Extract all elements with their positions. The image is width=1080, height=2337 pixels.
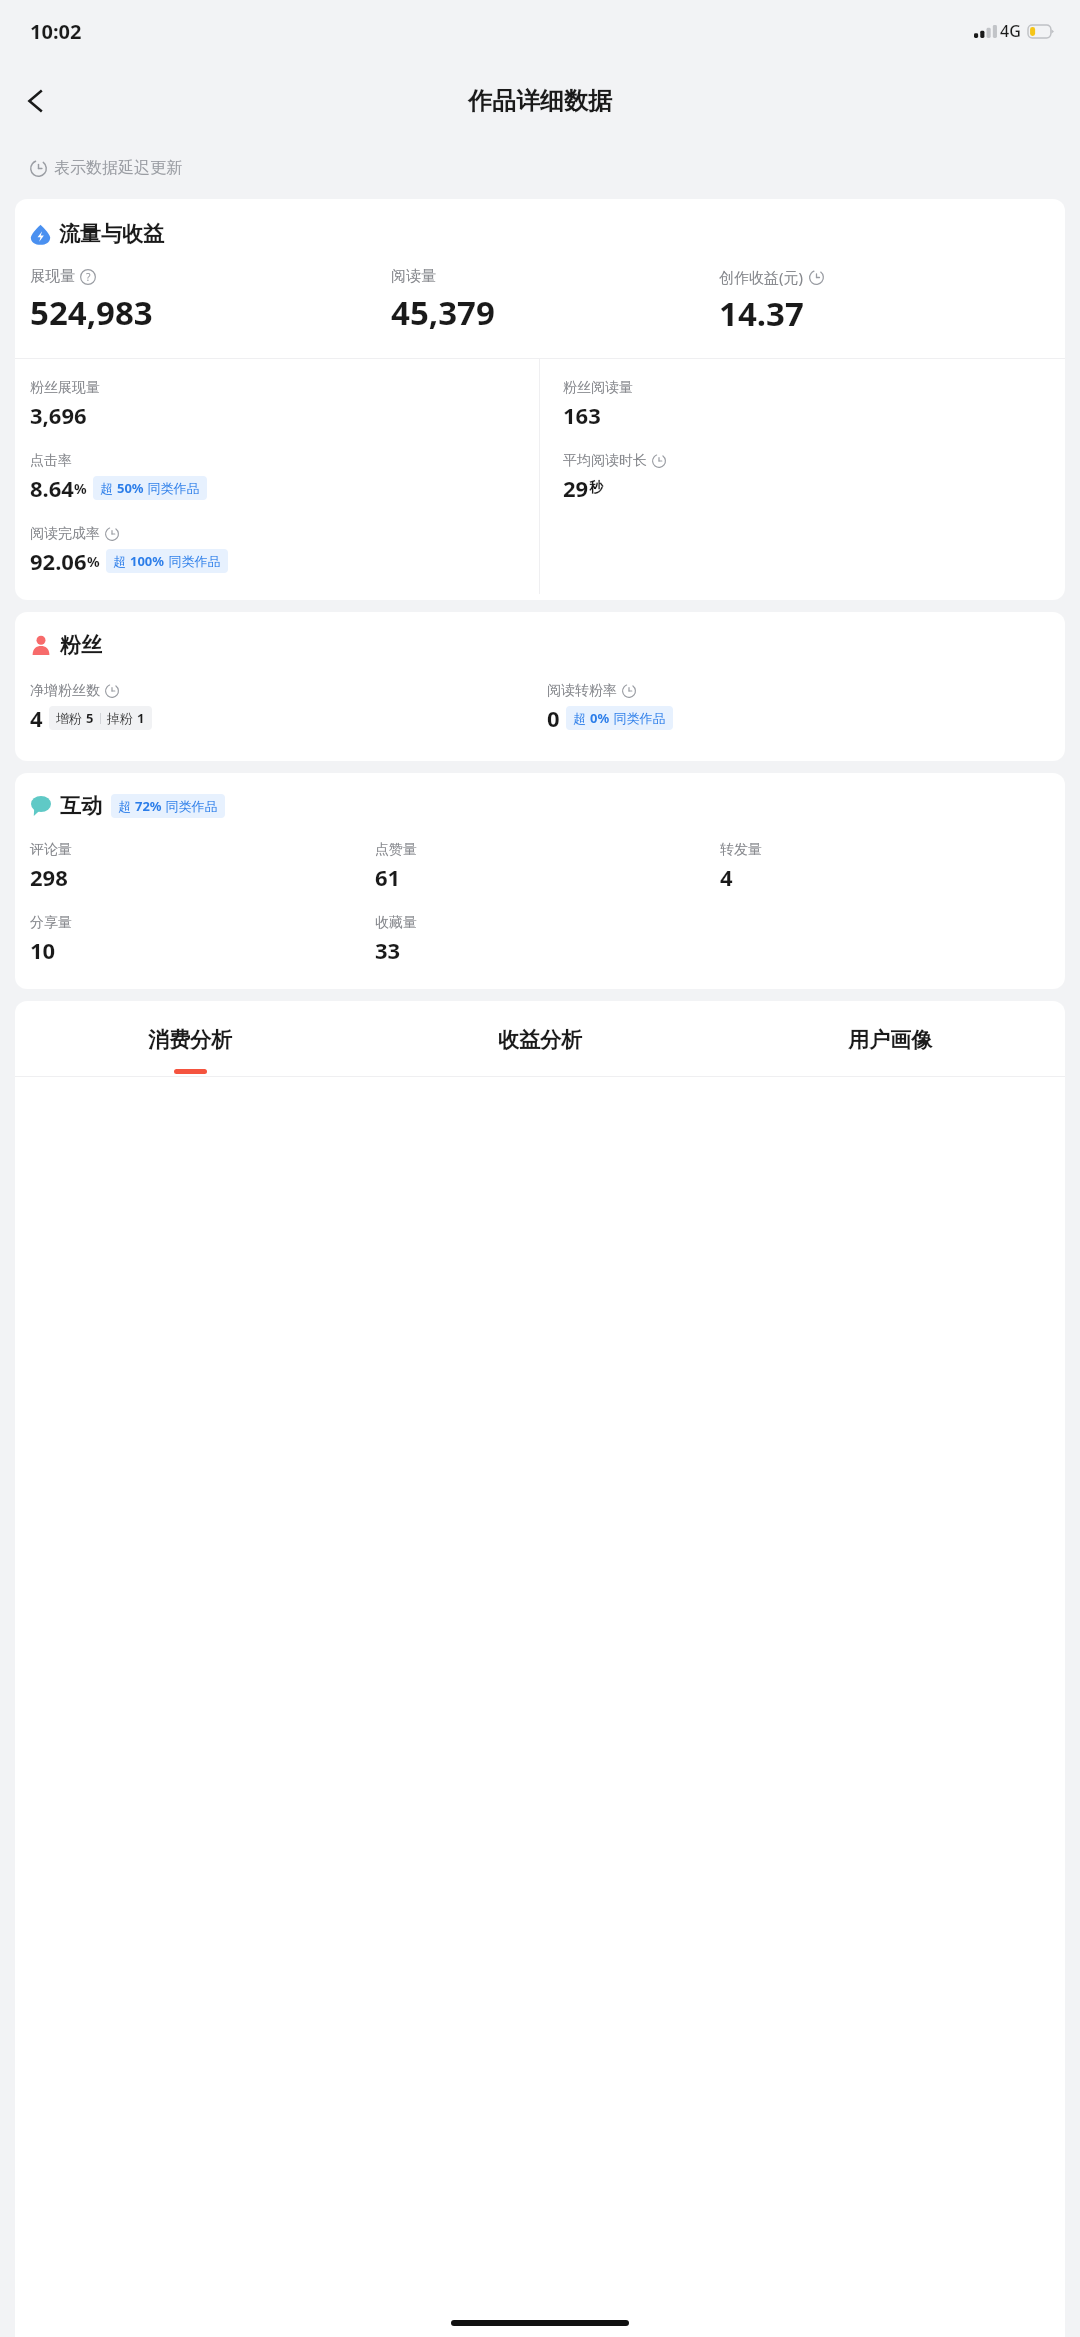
staticText: 平均阅读时长 [563,452,647,470]
staticText: 点击率 [30,452,72,470]
staticText: 10:02 [30,18,82,45]
staticText: 298 [30,862,68,892]
staticText: 524,983 [30,290,153,335]
staticText: 粉丝展现量 [30,379,100,397]
staticText: 50% [117,479,144,497]
staticText: 8.64 [30,473,74,503]
staticText: 净增粉丝数 [30,682,100,700]
staticText: % [87,552,100,571]
staticText: 秒 [589,479,603,497]
staticText: 29 [563,473,589,503]
staticText: 表示数据延迟更新 [54,158,182,178]
staticText: 92.06 [30,546,87,576]
staticText: 收益分析 [498,1027,582,1053]
staticText: 收藏量 [375,914,417,932]
staticText: 3,696 [30,400,87,430]
staticText: 粉丝阅读量 [563,379,633,397]
button[interactable]: Back [8,73,64,129]
staticText: 同类作品 [144,479,200,497]
staticText: 互动 [60,793,102,819]
staticText: 掉粉 [107,709,137,727]
staticText: 4 [30,703,43,733]
staticText: ? [86,270,91,284]
staticText: 展现量 [30,267,75,286]
staticText: 阅读量 [391,267,436,286]
staticText: % [74,479,87,498]
staticText: 14.37 [719,291,804,336]
staticText: 超 [573,709,590,727]
staticText: 创作收益(元) [719,267,804,287]
staticText: 0 [547,703,560,733]
staticText: 100% [130,552,165,570]
staticText: 超 [118,797,135,815]
staticText: 点赞量 [375,841,417,859]
staticText: 同类作品 [165,552,221,570]
staticText: 45,379 [391,290,495,335]
staticText: 流量与收益 [59,221,164,247]
button[interactable]: 粉丝 [15,612,1065,761]
button[interactable]: 流量与收益 [15,199,1065,600]
staticText: 同类作品 [162,797,218,815]
staticText: 分享量 [30,914,72,932]
staticText: 作品详细数据 [468,86,612,116]
staticText: 超 [100,479,117,497]
staticText: 阅读完成率 [30,525,100,543]
staticText: 0% [590,709,610,727]
staticText: 同类作品 [610,709,666,727]
staticText: 5 [86,709,94,727]
staticText: 4 [720,862,733,892]
button[interactable]: 用户画像 [715,1027,1065,1074]
staticText: 转发量 [720,841,762,859]
staticText: 10 [30,935,56,965]
button[interactable]: 互动 [15,773,1065,989]
staticText: 超 [113,552,130,570]
staticText: 粉丝 [60,632,102,658]
staticText: 1 [137,709,145,727]
staticText: 72% [135,797,162,815]
staticText: 4G [1000,20,1021,42]
staticText: 增粉 [56,709,86,727]
staticText: 评论量 [30,841,72,859]
button[interactable]: 消费分析 [15,1027,365,1074]
button[interactable]: 收益分析 [365,1027,715,1074]
staticText: 33 [375,935,401,965]
staticText: 61 [375,862,401,892]
staticText: 163 [563,400,601,430]
staticText: 阅读转粉率 [547,682,617,700]
staticText: 用户画像 [848,1027,932,1053]
staticText: 消费分析 [148,1027,232,1053]
